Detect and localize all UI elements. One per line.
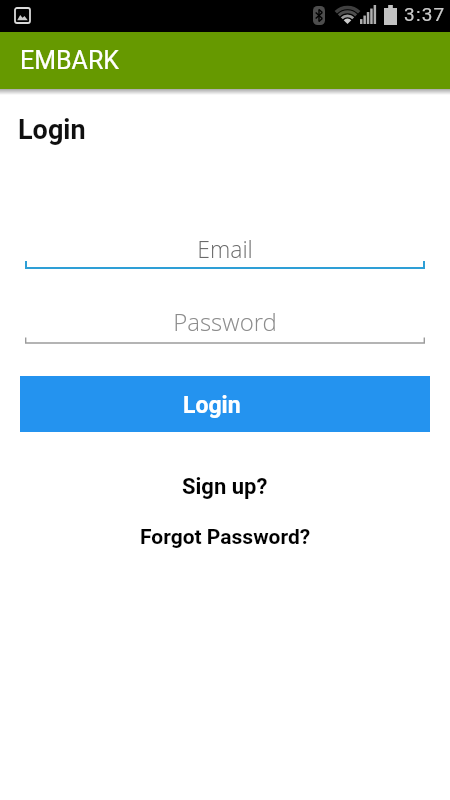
staticText: Forgot Password?	[140, 525, 311, 550]
staticText: 3:37	[404, 3, 446, 25]
button[interactable]: Sign up?	[182, 474, 268, 500]
staticText: Email	[0, 233, 450, 264]
staticText: Sign up?	[182, 474, 268, 500]
button[interactable]: Login	[20, 376, 430, 432]
button[interactable]	[25, 306, 425, 344]
button[interactable]	[25, 232, 425, 269]
staticText: Password	[0, 305, 450, 338]
staticText: Login	[183, 392, 241, 419]
staticText: EMBARK	[20, 46, 120, 75]
button[interactable]: Forgot Password?	[140, 525, 311, 550]
staticText: Login	[18, 114, 86, 146]
